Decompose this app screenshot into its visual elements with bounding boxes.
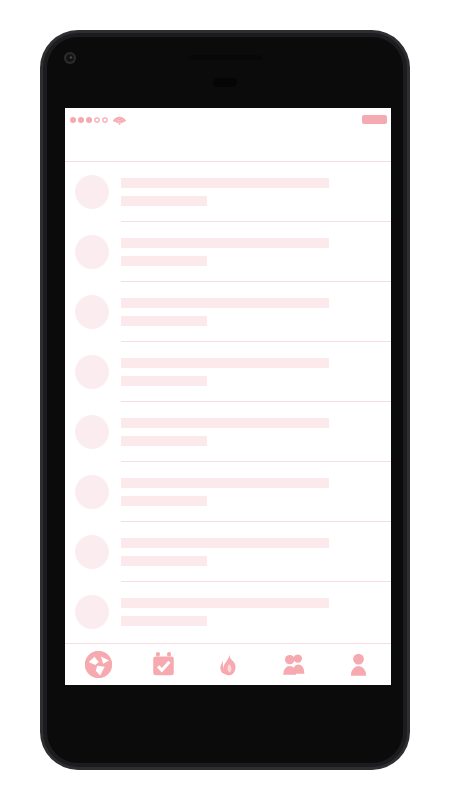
button[interactable]: [65, 402, 391, 461]
button[interactable]: [65, 582, 391, 641]
button[interactable]: [65, 522, 391, 581]
button[interactable]: [65, 222, 391, 281]
button[interactable]: [65, 162, 391, 221]
button[interactable]: Explore: [65, 644, 131, 685]
button[interactable]: Trending: [196, 644, 261, 685]
button[interactable]: [65, 342, 391, 401]
button[interactable]: [65, 462, 391, 521]
button[interactable]: Events: [131, 644, 196, 685]
button[interactable]: [65, 282, 391, 341]
button[interactable]: Friends: [261, 644, 326, 685]
button[interactable]: Profile: [326, 644, 391, 685]
